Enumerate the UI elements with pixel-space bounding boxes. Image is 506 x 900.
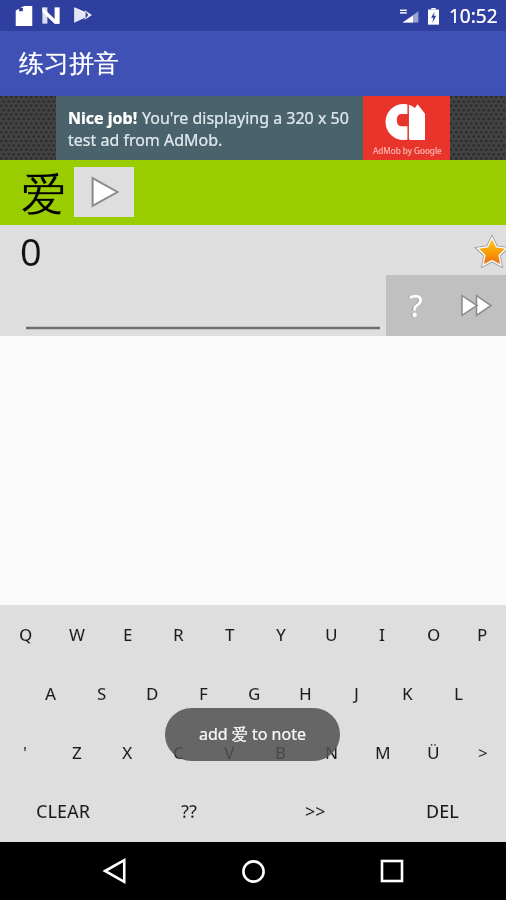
staticText: V xyxy=(224,741,235,764)
staticText: test ad from AdMob. xyxy=(68,129,223,151)
button[interactable]: DEL xyxy=(379,781,506,842)
staticText: M xyxy=(375,741,391,764)
button[interactable]: N xyxy=(306,723,357,781)
button[interactable]: S xyxy=(76,664,127,723)
button[interactable]: M xyxy=(357,723,408,781)
staticText: W xyxy=(69,623,85,646)
button[interactable]: ?? xyxy=(126,781,252,842)
staticText: You're displaying a 320 x 50 xyxy=(142,107,349,129)
staticText: add 爱 to note xyxy=(199,723,306,745)
button[interactable]: Home xyxy=(229,847,277,895)
staticText: D xyxy=(146,682,159,705)
button[interactable]: G xyxy=(229,664,280,723)
staticText: B xyxy=(275,741,287,764)
button[interactable]: I xyxy=(357,605,408,664)
button[interactable]: D xyxy=(127,664,178,723)
button[interactable]: Next xyxy=(446,275,506,336)
staticText: N xyxy=(325,741,339,764)
button[interactable]: Z xyxy=(51,723,102,781)
staticText: AdMob by Google xyxy=(373,145,442,156)
staticText: 爱 xyxy=(21,167,66,224)
staticText: G xyxy=(248,682,261,705)
staticText: X xyxy=(122,741,133,764)
button[interactable]: Recents xyxy=(368,847,416,895)
staticText: Y xyxy=(276,623,286,646)
button[interactable]: CLEAR xyxy=(0,781,126,842)
button[interactable]: ' xyxy=(0,723,51,781)
button[interactable]: F xyxy=(178,664,229,723)
staticText: P xyxy=(477,623,488,646)
button[interactable]: W xyxy=(51,605,102,664)
button[interactable]: Ü xyxy=(408,723,459,781)
staticText: T xyxy=(225,623,235,646)
button[interactable]: C xyxy=(153,723,204,781)
staticText: Z xyxy=(72,741,82,764)
staticText: Nice job! xyxy=(68,107,142,129)
button[interactable]: R xyxy=(153,605,204,664)
button[interactable]: > xyxy=(459,723,506,781)
staticText: K xyxy=(402,682,413,705)
button[interactable]: J xyxy=(331,664,382,723)
button[interactable]: >> xyxy=(252,781,379,842)
staticText: ?? xyxy=(181,799,198,824)
staticText: U xyxy=(325,623,338,646)
staticText: > xyxy=(478,741,488,764)
button[interactable]: AdMob by Google xyxy=(363,96,450,160)
button[interactable]: P xyxy=(459,605,506,664)
button[interactable]: A xyxy=(25,664,76,723)
button[interactable]: K xyxy=(382,664,433,723)
staticText: S xyxy=(97,682,107,705)
staticText: ' xyxy=(23,741,28,764)
button[interactable]: Favourite xyxy=(472,232,506,272)
staticText: L xyxy=(454,682,464,705)
button[interactable]: Hint xyxy=(386,275,446,336)
button[interactable]: L xyxy=(433,664,484,723)
staticText: Q xyxy=(19,623,33,646)
staticText: 10:52 xyxy=(449,3,498,29)
staticText: E xyxy=(123,623,133,646)
staticText: CLEAR xyxy=(36,799,91,824)
staticText: 练习拼音 xyxy=(19,48,119,79)
button[interactable]: Play pronunciation xyxy=(74,167,134,217)
staticText: I xyxy=(379,623,386,646)
button[interactable]: E xyxy=(102,605,153,664)
staticText: DEL xyxy=(426,799,459,824)
button[interactable]: O xyxy=(408,605,459,664)
staticText: 0 xyxy=(20,225,42,277)
button[interactable]: B xyxy=(255,723,306,781)
staticText: C xyxy=(173,741,184,764)
staticText: >> xyxy=(305,799,326,824)
button[interactable]: V xyxy=(204,723,255,781)
button[interactable]: U xyxy=(306,605,357,664)
staticText: J xyxy=(354,682,359,705)
button[interactable]: Q xyxy=(0,605,51,664)
button[interactable]: Back xyxy=(91,847,139,895)
button[interactable]: Y xyxy=(255,605,306,664)
button[interactable]: H xyxy=(280,664,331,723)
staticText: O xyxy=(427,623,441,646)
staticText: Ü xyxy=(427,741,440,764)
staticText: H xyxy=(299,682,312,705)
staticText: R xyxy=(173,623,184,646)
staticText: ? xyxy=(409,284,423,326)
staticText: ? xyxy=(408,284,422,326)
staticText: F xyxy=(199,682,208,705)
staticText: A xyxy=(45,682,57,705)
button[interactable]: T xyxy=(204,605,255,664)
button[interactable]: X xyxy=(102,723,153,781)
